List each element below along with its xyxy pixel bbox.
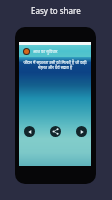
staticText: जीवन में सफलता उसी को मिलती है जो कड़ी म… bbox=[22, 60, 88, 70]
staticText: आज का सुविचार bbox=[33, 49, 58, 54]
button[interactable]: Share bbox=[50, 126, 61, 137]
button[interactable]: Next bbox=[76, 126, 87, 137]
button[interactable]: Previous bbox=[24, 126, 35, 137]
staticText: Easy to share bbox=[31, 5, 81, 16]
